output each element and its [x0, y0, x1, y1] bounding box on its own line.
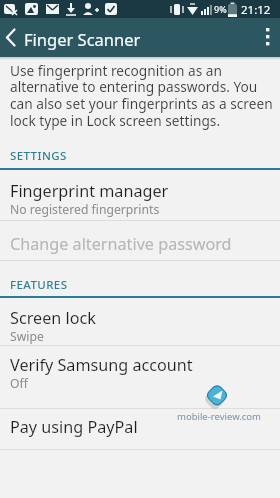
button[interactable]: Screen lock [0, 298, 280, 345]
staticText: Swipe [10, 328, 44, 345]
staticText: Fingerprint manager [10, 180, 169, 202]
button[interactable]: Fingerprint manager [0, 170, 280, 220]
button[interactable]: Change alternative password [0, 221, 280, 260]
button[interactable] [256, 18, 280, 57]
staticText: 9% [214, 3, 227, 15]
staticText: 21:12 [241, 2, 271, 18]
staticText: SETTINGS [10, 148, 67, 164]
staticText: mobile-review.com [177, 410, 261, 423]
button[interactable]: Verify Samsung account [0, 346, 280, 408]
staticText: Pay using PayPal [10, 416, 138, 438]
button[interactable]: Pay using PayPal [0, 409, 280, 449]
staticText: Verify Samsung account [10, 354, 193, 376]
staticText: No registered fingerprints [10, 201, 160, 218]
staticText: Off [10, 375, 28, 392]
button[interactable] [0, 18, 24, 57]
staticText: Finger Scanner [24, 28, 141, 50]
staticText: FEATURES [10, 277, 68, 293]
staticText: Change alternative password [10, 233, 232, 255]
staticText: Use fingerprint recognition as an altern… [10, 61, 273, 130]
staticText: Screen lock [10, 307, 96, 329]
